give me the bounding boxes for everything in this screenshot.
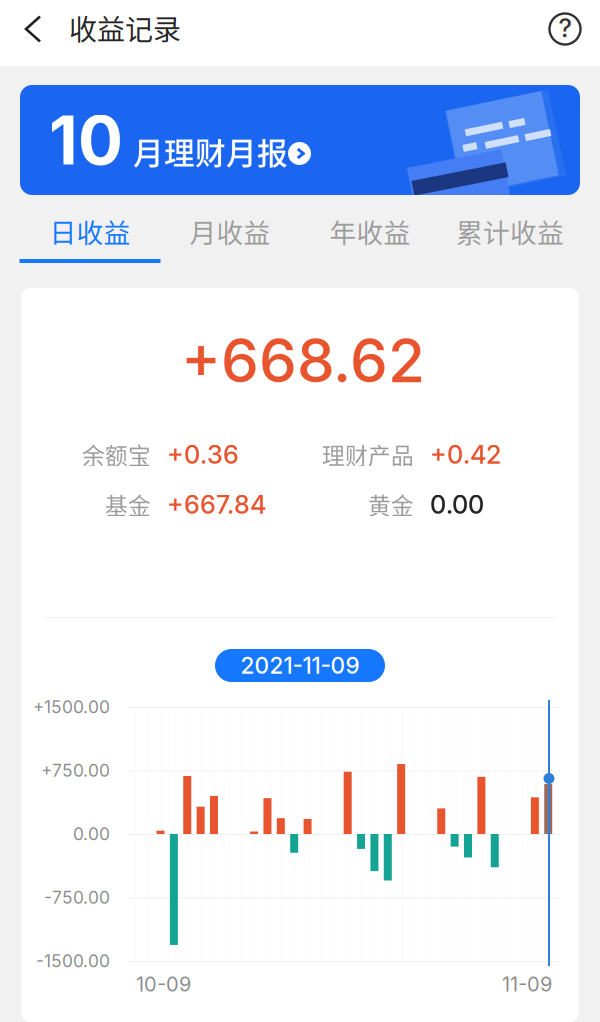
staticText: 收益记录 [69, 8, 181, 48]
button[interactable]: 年收益 [300, 203, 440, 269]
staticText: 月收益 [189, 212, 270, 250]
staticText: 11-09 [502, 972, 552, 996]
staticText: 年收益 [329, 212, 410, 250]
staticText: 10-09 [136, 972, 191, 996]
staticText: 日收益 [49, 212, 130, 250]
staticText: +0.36 [167, 439, 239, 470]
staticText: -1500.00 [36, 950, 110, 971]
staticText: +750.00 [41, 760, 110, 781]
staticText: 黄金 [368, 488, 414, 521]
staticText: +0.42 [430, 439, 501, 470]
staticText: +668.62 [181, 324, 425, 397]
button[interactable]: 日收益 [20, 203, 160, 269]
staticText: +1500.00 [33, 696, 110, 717]
staticText: 余额宝 [82, 438, 151, 471]
staticText: 10 [49, 100, 123, 181]
staticText: 0.00 [430, 489, 484, 520]
button[interactable]: 累计收益 [440, 203, 580, 269]
button[interactable]: 10 [20, 85, 580, 195]
button[interactable]: 月收益 [160, 203, 300, 269]
staticText: 累计收益 [456, 212, 564, 250]
staticText: 0.00 [73, 823, 110, 844]
button[interactable]: Back [8, 0, 58, 62]
button[interactable]: Help [535, 0, 595, 62]
staticText: 基金 [105, 488, 151, 521]
staticText: 2021-11-09 [240, 652, 359, 679]
staticText: 月理财月报 [133, 129, 288, 173]
staticText: +667.84 [167, 489, 266, 520]
staticText: ? [558, 13, 571, 43]
staticText: -750.00 [44, 887, 110, 908]
staticText: 理财产品 [322, 438, 414, 471]
